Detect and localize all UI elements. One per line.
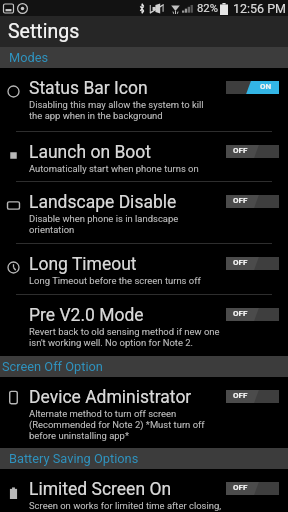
staticText: Revert back to old sensing method if new… [29, 326, 220, 348]
staticText: Screen Off Option [2, 359, 103, 374]
staticText: Long Timeout [29, 254, 137, 275]
staticText: OFF [233, 196, 248, 205]
staticText: Disabling this may allow the system to k… [29, 99, 204, 121]
staticText: OFF [233, 391, 248, 400]
staticText: Settings [8, 20, 80, 43]
button[interactable]: Device Administrator [0, 377, 288, 448]
button[interactable]: Switch off [226, 390, 279, 403]
button[interactable]: Launch on Boot [0, 132, 288, 181]
button[interactable]: Status Bar Icon [0, 68, 288, 131]
staticText: Alternate method to turn off screen (Rec… [29, 408, 205, 441]
button[interactable]: Switch on [226, 81, 279, 94]
button[interactable]: Long Timeout [0, 244, 288, 294]
staticText: Long Timeout before the screen turns off [29, 275, 201, 286]
staticText: Pre V2.0 Mode [29, 305, 144, 326]
staticText: OFF [233, 258, 248, 267]
button[interactable]: Switch off [226, 482, 279, 495]
staticText: Disable when phone is in landscape orien… [29, 213, 179, 235]
staticText: 82% [197, 2, 218, 15]
staticText: Screen on works for limited time after c… [29, 500, 222, 511]
staticText: Device Administrator [29, 387, 192, 408]
button[interactable]: Limited Screen On [0, 469, 288, 512]
staticText: Battery Saving Options [9, 451, 139, 466]
button[interactable]: Landscape Disable [0, 182, 288, 243]
button[interactable]: Switch off [226, 257, 279, 270]
button[interactable]: Pre V2.0 Mode [0, 295, 288, 356]
staticText: Automatically start when phone turns on [29, 163, 199, 174]
staticText: Launch on Boot [29, 142, 151, 163]
staticText: OFF [233, 309, 248, 318]
staticText: Status Bar Icon [29, 78, 148, 99]
button[interactable]: Switch off [226, 308, 279, 321]
staticText: Modes [9, 50, 49, 65]
staticText: OFF [233, 146, 248, 155]
staticText: 12:56 PM [233, 1, 287, 16]
button[interactable]: Switch off [226, 195, 279, 208]
staticText: OFF [233, 483, 248, 492]
staticText: Limited Screen On [29, 479, 172, 500]
staticText: ON [260, 82, 272, 91]
button[interactable]: Switch off [226, 145, 279, 158]
staticText: Landscape Disable [29, 192, 177, 213]
